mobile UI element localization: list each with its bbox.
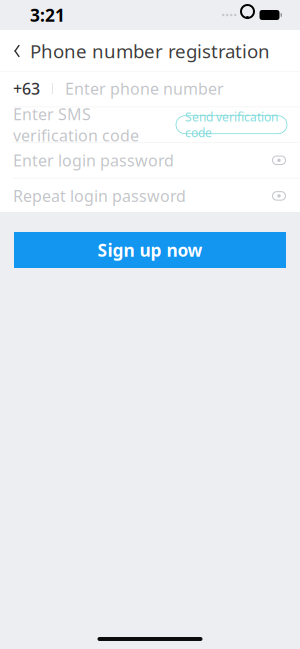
staticText: Sign up now: [97, 238, 202, 261]
staticText: Repeat login password: [13, 185, 186, 206]
staticText: 3:21: [30, 3, 65, 26]
button[interactable]: Send verification code: [176, 116, 287, 134]
button[interactable]: Show password: [266, 183, 292, 209]
staticText: Enter phone number: [65, 78, 224, 99]
button[interactable]: Show password: [266, 147, 292, 173]
button[interactable]: Back: [0, 31, 34, 71]
staticText: +63: [13, 78, 40, 99]
button[interactable]: Sign up now: [14, 232, 286, 268]
staticText: Send verification code: [185, 109, 278, 141]
staticText: Phone number registration: [30, 39, 270, 63]
staticText: Enter SMS verification code: [13, 103, 139, 146]
staticText: Enter login password: [13, 150, 174, 171]
